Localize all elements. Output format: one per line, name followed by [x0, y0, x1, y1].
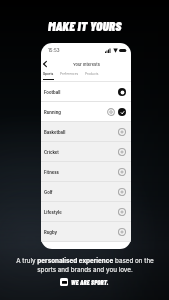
button[interactable]: Add [118, 188, 126, 196]
button[interactable]: Cricket [41, 142, 131, 162]
staticText: Basketball [44, 130, 66, 135]
button[interactable]: Basketball [41, 122, 131, 142]
button[interactable]: Products [85, 72, 99, 79]
button[interactable]: Fitness [41, 162, 131, 182]
button[interactable]: Add [118, 168, 126, 176]
button[interactable]: Selected [118, 108, 126, 116]
staticText: Sports [43, 72, 54, 76]
button[interactable]: Lifestyle [41, 202, 131, 222]
button[interactable]: Add [118, 228, 126, 236]
button[interactable]: Rugby [41, 222, 131, 242]
staticText: WE ARE SPORT. [71, 278, 109, 286]
staticText: MAKE IT YOURS [48, 17, 122, 33]
staticText: Football [44, 90, 61, 95]
staticText: 15:53 [48, 48, 60, 53]
staticText: Running [44, 110, 61, 115]
staticText: Your Interests [73, 62, 100, 67]
staticText: Products [85, 72, 99, 76]
staticText: Golf [44, 190, 53, 195]
staticText: Fitness [44, 170, 59, 175]
button[interactable]: Running [41, 102, 131, 122]
staticText: Preferences [60, 72, 79, 76]
button[interactable]: Options [107, 108, 115, 116]
button[interactable]: Add [118, 148, 126, 156]
button[interactable]: Add [118, 128, 126, 136]
button[interactable]: Sports [43, 72, 54, 80]
staticText: Cricket [44, 150, 59, 155]
staticText: Lifestyle [44, 210, 62, 215]
button[interactable]: Favourite [118, 88, 126, 96]
button[interactable]: Back [41, 59, 49, 69]
button[interactable]: Golf [41, 182, 131, 202]
staticText: sports and brands and you love. [37, 266, 133, 274]
button[interactable]: WE ARE SPORT. [60, 278, 109, 286]
staticText: A truly personalised experience based on… [16, 257, 154, 265]
staticText: Rugby [44, 230, 58, 235]
button[interactable]: Football [41, 82, 131, 102]
button[interactable]: Add [118, 208, 126, 216]
button[interactable]: Preferences [60, 72, 79, 79]
